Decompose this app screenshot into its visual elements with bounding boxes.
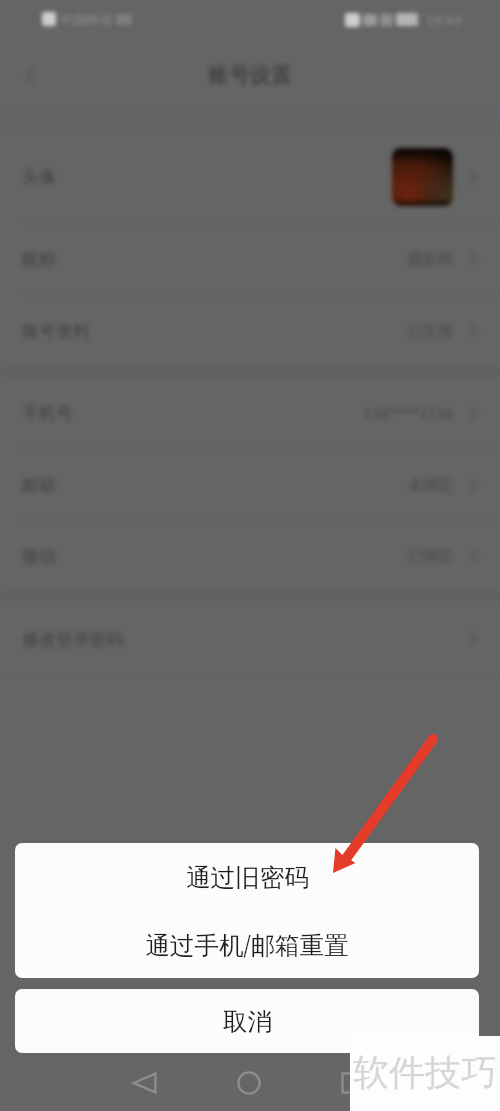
staticText: 微信 [22, 546, 56, 567]
staticText: 通过手机/邮箱重置 [145, 928, 349, 961]
staticText: 通过旧密码 [186, 862, 309, 893]
staticText: 账号资料 [22, 321, 90, 342]
staticText: 账号设置 [208, 62, 292, 88]
staticText: 手机号 [22, 403, 73, 424]
staticText: 邮箱 [22, 475, 56, 496]
button[interactable]: 通过手机/邮箱重置 [15, 911, 479, 978]
staticText: 修改登录密码 [22, 629, 124, 650]
staticText: 头像 [22, 167, 56, 188]
staticText: 取消 [223, 1006, 272, 1037]
button[interactable]: Back [122, 1061, 166, 1105]
staticText: 昵称 [22, 249, 56, 270]
button[interactable]: Home [227, 1061, 271, 1105]
button[interactable]: Recents [330, 1061, 374, 1105]
staticText: 摄影师 [408, 250, 453, 269]
staticText: 138****1234 [364, 403, 453, 423]
staticText: 软件技巧 [353, 1050, 497, 1095]
staticText: 未绑定 [408, 476, 453, 495]
button[interactable]: 取消 [15, 989, 479, 1053]
staticText: 16:44 [426, 10, 462, 29]
button[interactable]: 头像 [0, 131, 500, 223]
staticText: 中国移动 [60, 11, 112, 27]
button[interactable]: 通过旧密码 [15, 843, 479, 911]
